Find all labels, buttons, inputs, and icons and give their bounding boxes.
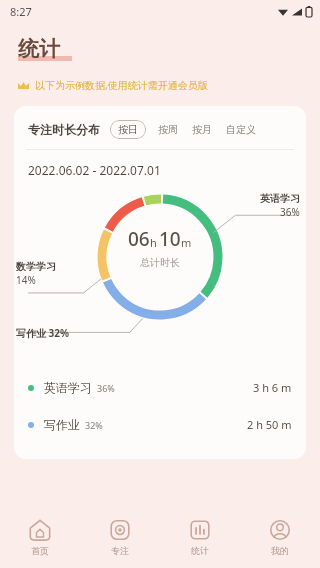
staticText: 3 h 6 m — [253, 380, 292, 395]
staticText: 我的 — [271, 545, 289, 556]
staticText: 8:27 — [10, 4, 32, 19]
button[interactable]: 我的 — [240, 513, 320, 562]
staticText: 14% — [16, 273, 36, 287]
button[interactable]: 自定义 — [222, 120, 260, 139]
staticText: 专注时长分布 — [28, 122, 100, 137]
staticText: 英语学习 — [260, 192, 300, 205]
staticText: 按月 — [192, 123, 212, 136]
staticText: 统计 — [191, 545, 209, 556]
staticText: 10 — [159, 226, 181, 252]
staticText: 数学学习 — [16, 260, 56, 273]
staticText: 32% — [85, 419, 103, 431]
staticText: 总计时长 — [140, 256, 180, 269]
staticText: 统计 — [18, 36, 60, 62]
button[interactable]: 统计 — [160, 513, 240, 562]
staticText: 首页 — [31, 545, 49, 556]
staticText: 06 — [128, 226, 150, 252]
staticText: 写作业 32% — [16, 326, 70, 340]
staticText: 以下为示例数据,使用统计需开通会员版 — [35, 78, 208, 92]
staticText: 36% — [97, 382, 115, 394]
staticText: 2022.06.02 - 2022.07.01 — [28, 162, 161, 178]
staticText: 2 h 50 m — [247, 417, 292, 432]
button[interactable]: 按日 — [110, 120, 146, 139]
button[interactable]: 按月 — [188, 120, 216, 139]
staticText: 36% — [280, 205, 300, 219]
button[interactable]: 按周 — [154, 120, 182, 139]
staticText: 英语学习 — [44, 380, 92, 395]
staticText: 自定义 — [226, 123, 256, 136]
staticText: h — [150, 235, 157, 250]
staticText: m — [181, 235, 192, 250]
button[interactable]: 写作业 — [14, 406, 306, 443]
staticText: 专注 — [111, 545, 129, 556]
button[interactable]: 首页 — [0, 513, 80, 562]
staticText: 写作业 — [44, 417, 80, 432]
staticText: 按日 — [118, 123, 138, 136]
button[interactable]: 英语学习 — [14, 369, 306, 406]
staticText: 按周 — [158, 123, 178, 136]
button[interactable]: 专注 — [80, 513, 160, 562]
